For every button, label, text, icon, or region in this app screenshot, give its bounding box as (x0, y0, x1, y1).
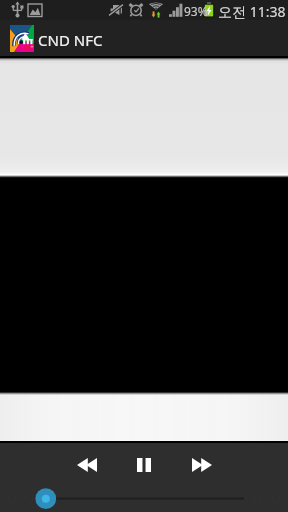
button[interactable]: Fast forward (186, 449, 218, 481)
staticText: 93% (184, 3, 208, 19)
button[interactable]: Pause (128, 449, 160, 481)
staticText: CND NFC (38, 30, 103, 50)
button[interactable]: CND NFC (0, 20, 288, 56)
button[interactable]: Rewind (71, 449, 103, 481)
button[interactable]: Seek bar (0, 486, 288, 512)
staticText: 오전 11:38 (218, 2, 286, 21)
